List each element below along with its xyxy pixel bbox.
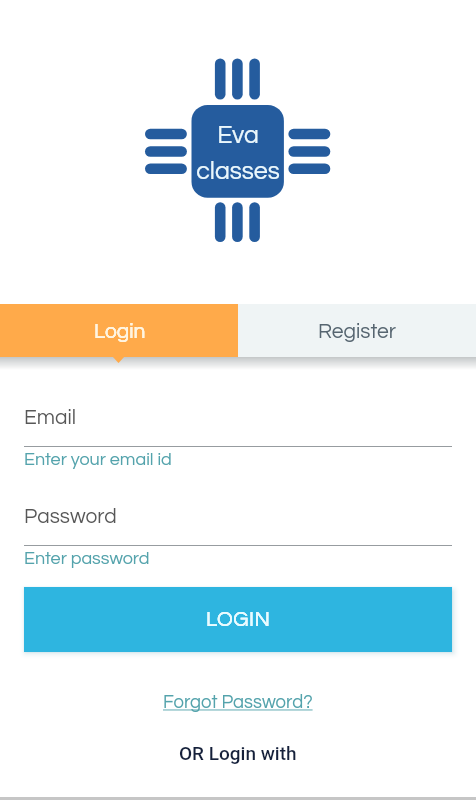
staticText: Login	[94, 321, 146, 343]
button[interactable]: Forgot Password?	[163, 693, 313, 712]
staticText: Password	[24, 506, 117, 528]
button[interactable]: Register	[238, 304, 476, 357]
staticText: Enter password	[24, 549, 150, 568]
staticText: Eva	[217, 122, 259, 148]
button[interactable]: LOGIN	[24, 587, 452, 652]
button[interactable]: Login	[0, 304, 238, 357]
staticText: Enter your email id	[24, 450, 172, 469]
staticText: LOGIN	[206, 609, 271, 631]
staticText: classes	[196, 158, 280, 184]
staticText: Register	[318, 321, 396, 343]
staticText: LOGIN	[206, 609, 271, 631]
staticText: Email	[24, 407, 77, 429]
staticText: OR Login with	[179, 742, 297, 764]
staticText: Login	[94, 321, 146, 343]
